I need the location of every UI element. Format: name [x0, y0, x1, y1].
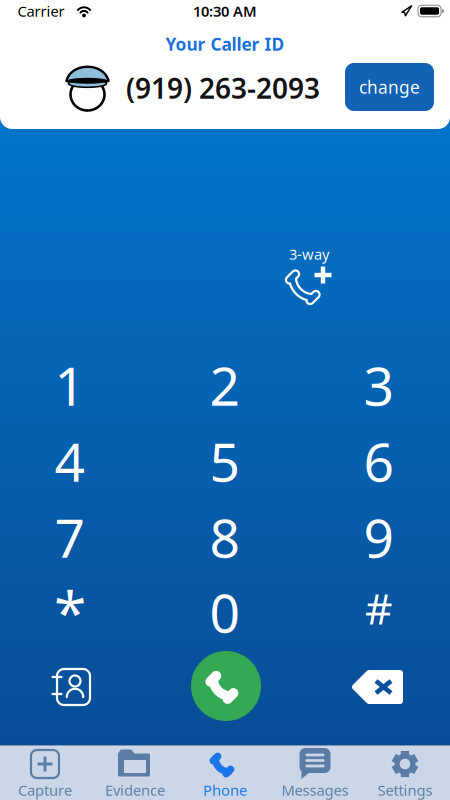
button[interactable]: 1 [15, 349, 125, 421]
button[interactable]: # [324, 572, 434, 644]
staticText: Evidence [105, 780, 165, 800]
staticText: 3 [363, 350, 394, 420]
staticText: 0 [209, 577, 240, 647]
button[interactable]: 3-way call [279, 246, 339, 312]
button[interactable]: Phone [183, 746, 267, 798]
staticText: 5 [209, 426, 240, 496]
button[interactable]: change [345, 63, 434, 111]
staticText: (919) 263-2093 [126, 69, 320, 107]
staticText: Phone [203, 780, 247, 800]
staticText: Carrier [17, 1, 64, 21]
staticText: 2 [209, 350, 240, 420]
button[interactable]: 7 [15, 501, 125, 573]
staticText: 7 [54, 502, 85, 572]
staticText: 3-way [289, 244, 329, 264]
button[interactable]: Messages [273, 746, 357, 798]
button[interactable]: 0 [170, 576, 280, 648]
button[interactable]: 5 [170, 425, 280, 497]
button[interactable]: Call [191, 651, 261, 721]
button[interactable]: * [15, 576, 125, 648]
button[interactable]: 8 [170, 501, 280, 573]
button[interactable]: Contacts [47, 665, 97, 709]
button[interactable]: 2 [170, 349, 280, 421]
button[interactable]: 9 [324, 501, 434, 573]
staticText: * [54, 573, 86, 651]
staticText: change [359, 75, 420, 98]
button[interactable]: Delete [352, 669, 404, 705]
button[interactable]: Capture [3, 746, 87, 798]
staticText: Capture [18, 780, 72, 800]
button[interactable]: Settings [363, 746, 447, 798]
button[interactable]: Evidence [93, 746, 177, 798]
button[interactable]: 4 [15, 425, 125, 497]
staticText: 8 [209, 502, 240, 572]
staticText: 10:30 AM [193, 1, 257, 21]
staticText: # [365, 580, 393, 636]
staticText: 4 [54, 426, 85, 496]
staticText: Settings [377, 780, 432, 800]
button[interactable]: 6 [324, 425, 434, 497]
staticText: Your Caller ID [165, 32, 284, 55]
staticText: Messages [281, 780, 348, 800]
staticText: 1 [54, 350, 85, 420]
button[interactable]: 3 [324, 349, 434, 421]
staticText: 6 [363, 426, 394, 496]
staticText: 9 [363, 502, 394, 572]
